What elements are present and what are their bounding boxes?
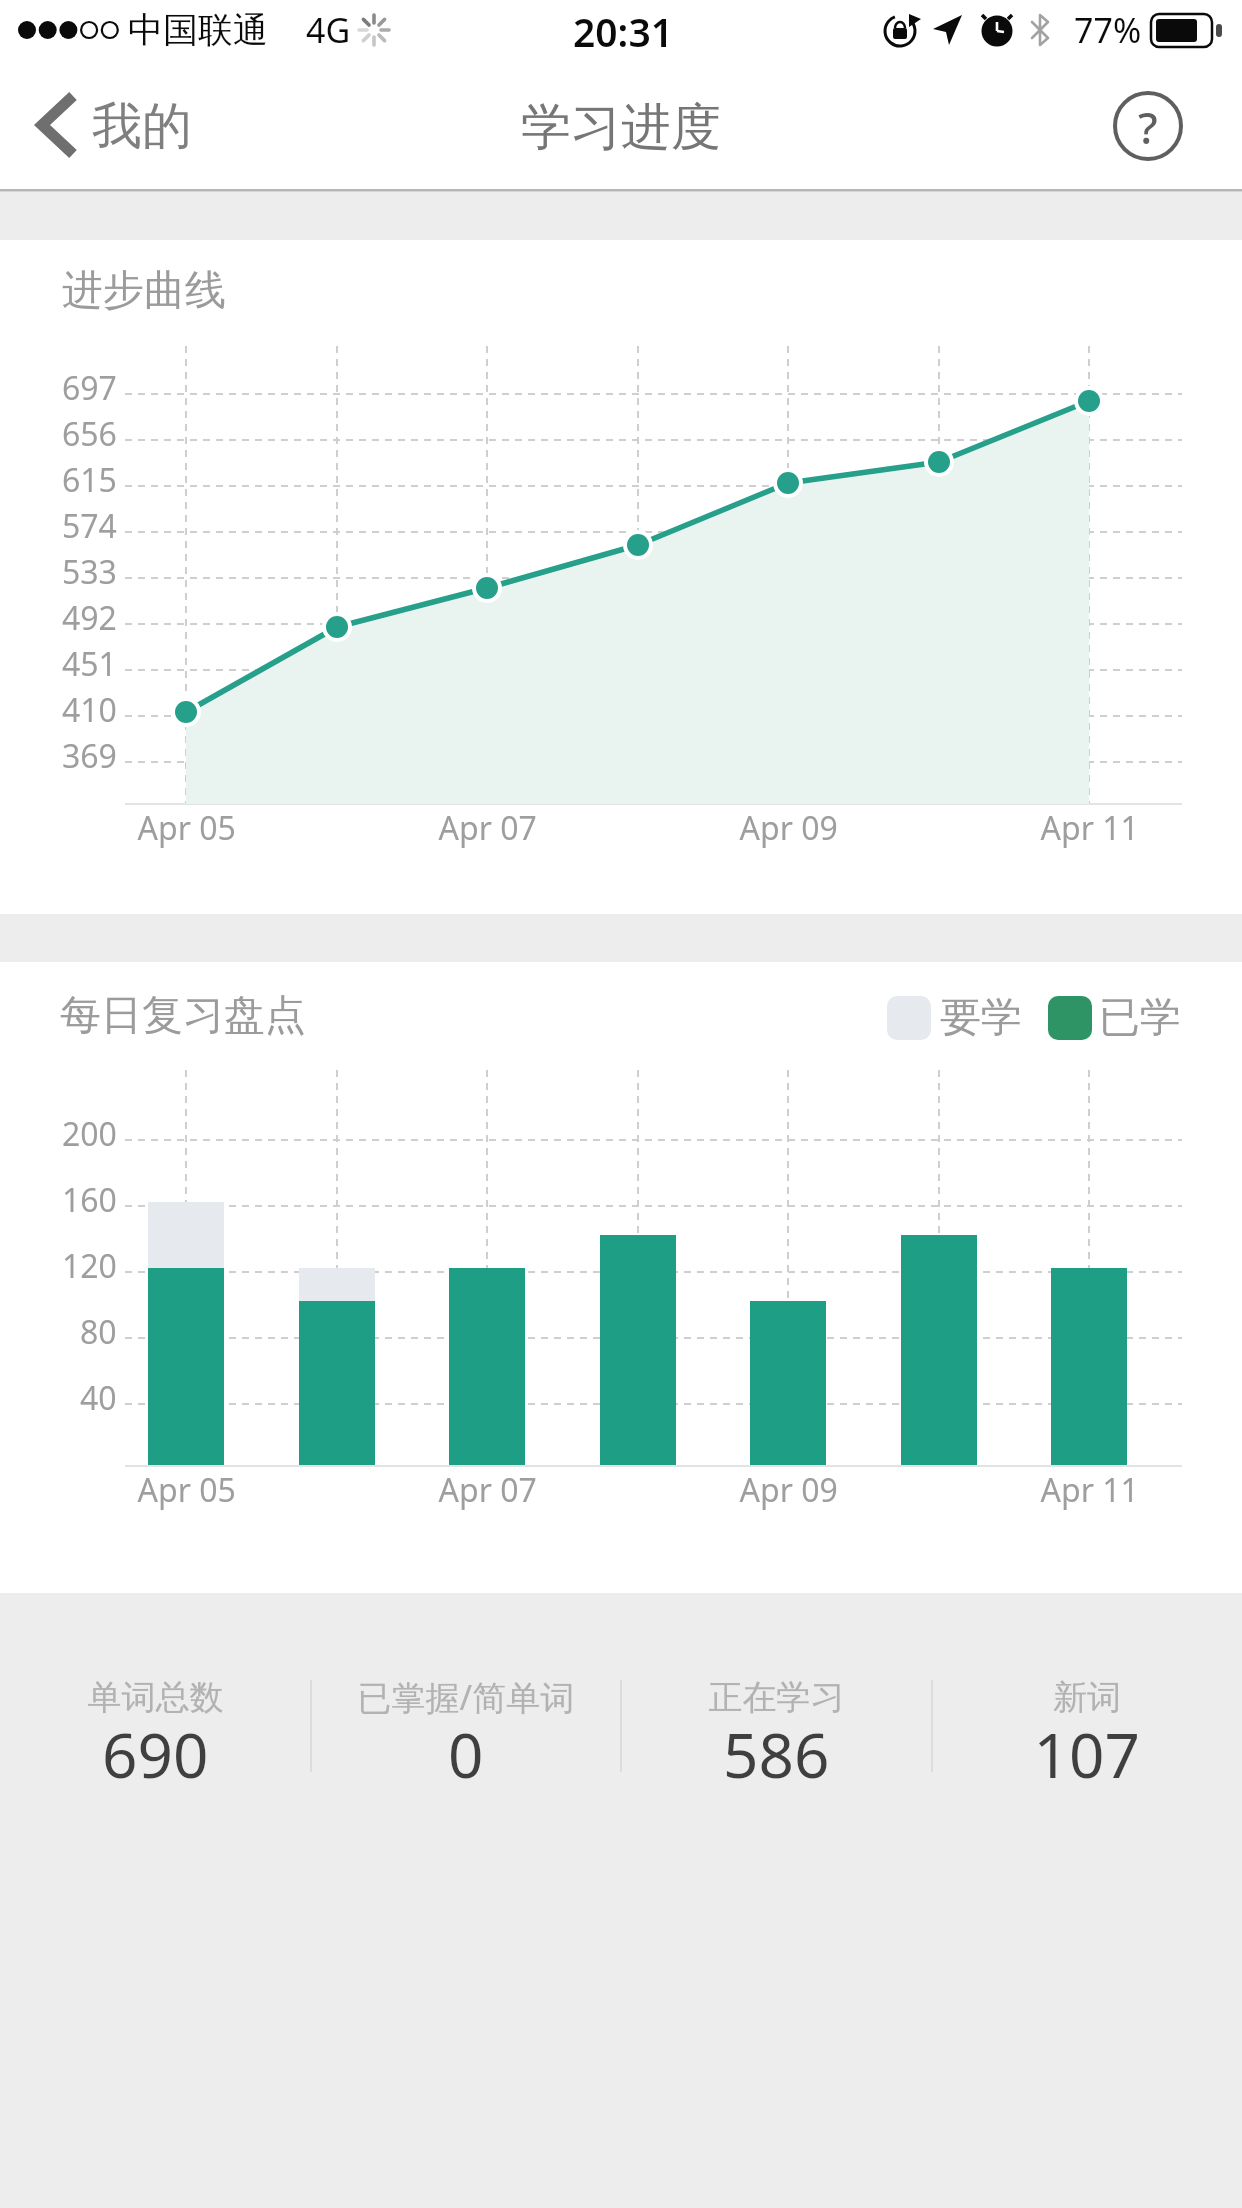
button[interactable]: [24, 84, 204, 168]
button[interactable]: [1108, 86, 1188, 166]
